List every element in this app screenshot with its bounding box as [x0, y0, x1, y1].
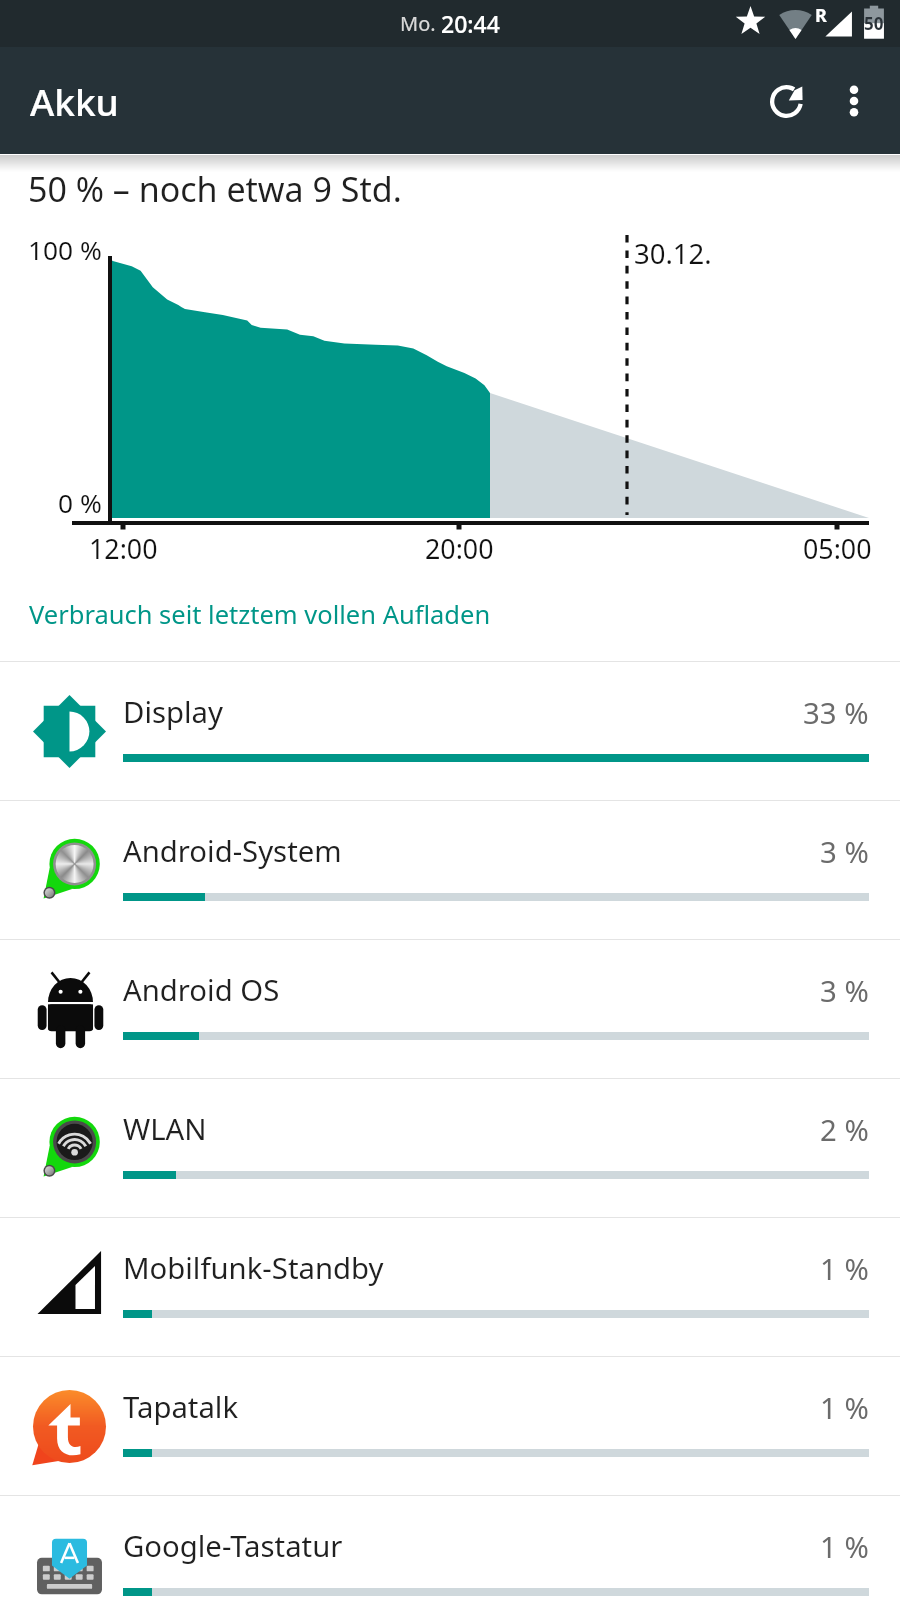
staticText: 3 %	[820, 832, 869, 872]
staticText: 100 %	[28, 232, 102, 268]
staticText: Google-Tastatur	[123, 1526, 343, 1566]
staticText: 3 %	[820, 971, 869, 1011]
staticText: 1 %	[820, 1388, 869, 1428]
staticText: 20:00	[425, 530, 494, 567]
staticText: 05:00	[803, 530, 872, 567]
staticText: WLAN	[123, 1109, 207, 1149]
button[interactable]: More options	[823, 70, 885, 132]
staticText: Android-System	[123, 831, 342, 871]
button[interactable]: Verbrauch seit letztem vollen Aufladen	[29, 597, 491, 632]
staticText: 12:00	[89, 530, 158, 567]
staticText: Display	[123, 692, 223, 732]
staticText: 33 %	[803, 693, 869, 733]
button[interactable]: Android OS	[0, 940, 900, 1078]
staticText: Android OS	[123, 970, 280, 1010]
staticText: 20:44	[441, 8, 500, 39]
staticText: 1 %	[820, 1527, 869, 1567]
staticText: 50 % – noch etwa 9 Std.	[28, 166, 402, 212]
staticText: Tapatalk	[123, 1387, 239, 1427]
button[interactable]: Refresh	[761, 70, 823, 132]
staticText: R	[815, 3, 827, 28]
staticText: 50	[864, 12, 884, 35]
button[interactable]: WLAN	[0, 1079, 900, 1217]
staticText: Akku	[30, 76, 119, 126]
staticText: Mo.	[400, 10, 441, 37]
staticText: 2 %	[820, 1110, 869, 1150]
staticText: 1 %	[820, 1249, 869, 1289]
button[interactable]: Android-System	[0, 801, 900, 939]
staticText: Mobilfunk-Standby	[123, 1248, 384, 1288]
button[interactable]: Display	[0, 662, 900, 800]
staticText: 30.12.	[634, 235, 712, 272]
staticText: 0 %	[58, 485, 102, 521]
button[interactable]: Tapatalk	[0, 1357, 900, 1495]
button[interactable]: Mobilfunk-Standby	[0, 1218, 900, 1356]
button[interactable]: Google-Tastatur	[0, 1496, 900, 1600]
